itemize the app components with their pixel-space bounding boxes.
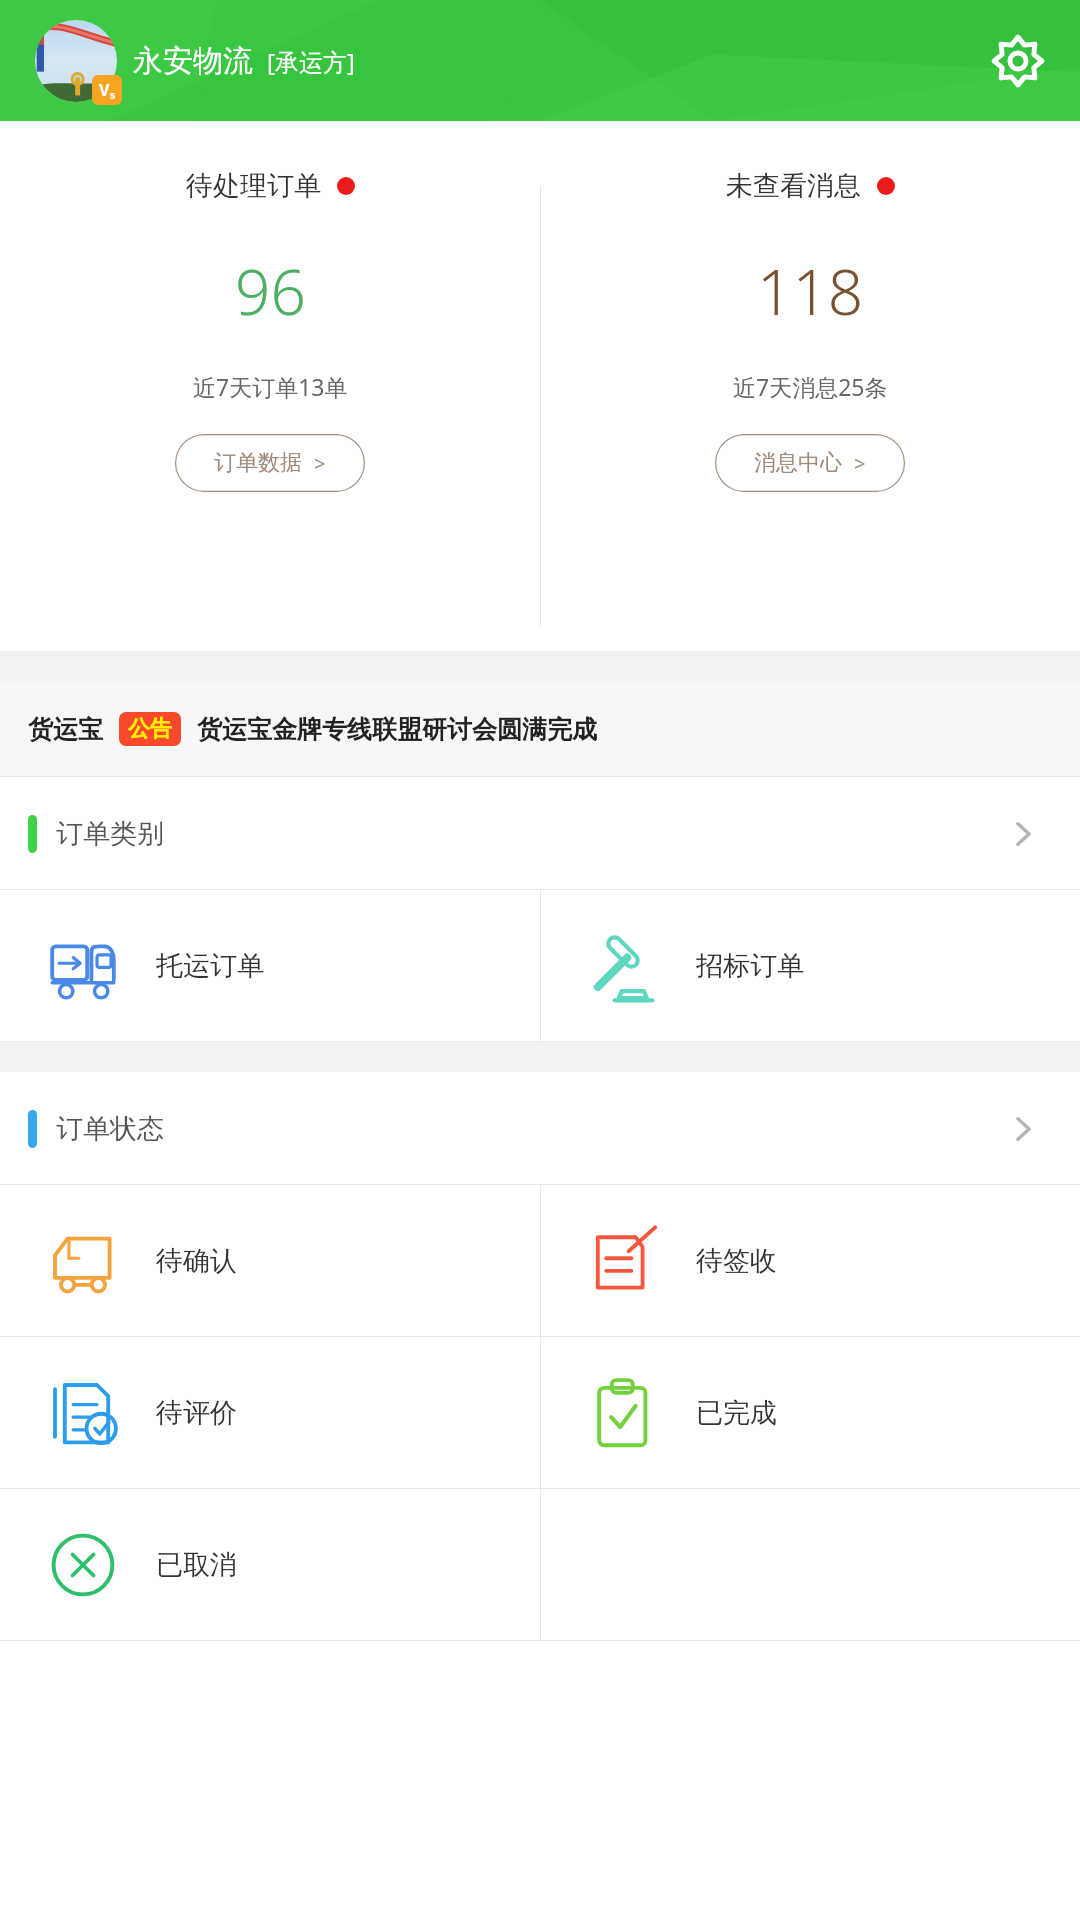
button[interactable]: 待确认 — [0, 1185, 540, 1337]
staticText: 招标订单 — [696, 949, 804, 983]
staticText: 已完成 — [696, 1396, 777, 1430]
staticText: 公告 — [128, 715, 172, 743]
staticText: 待评价 — [156, 1396, 237, 1430]
button[interactable]: 已取消 — [0, 1489, 540, 1641]
staticText: 待处理订单 — [186, 169, 321, 203]
button[interactable]: 招标订单 — [540, 890, 1080, 1042]
staticText: 118 — [757, 249, 864, 333]
button[interactable]: 待评价 — [0, 1337, 540, 1489]
staticText: > — [314, 450, 326, 477]
staticText: 已取消 — [156, 1548, 237, 1582]
staticText: 托运订单 — [156, 949, 264, 983]
staticText: [承运方] — [267, 45, 355, 78]
staticText: 订单类别 — [56, 817, 164, 851]
staticText: > — [854, 450, 866, 477]
button[interactable]: 订单类别 — [0, 777, 1080, 890]
button[interactable]: 已完成 — [540, 1337, 1080, 1489]
button[interactable]: 待签收 — [540, 1185, 1080, 1337]
staticText: V — [99, 79, 110, 101]
staticText: 96 — [235, 249, 306, 333]
button[interactable]: 订单数据 — [174, 434, 366, 492]
staticText: 近7天订单13单 — [193, 371, 348, 402]
button[interactable]: 托运订单 — [0, 890, 540, 1042]
button[interactable]: 消息中心 — [714, 434, 906, 492]
button[interactable]: Settings — [980, 23, 1056, 99]
staticText: 未查看消息 — [726, 169, 861, 203]
staticText: 订单数据 — [214, 449, 302, 477]
staticText: 5 — [110, 89, 116, 101]
staticText: 订单状态 — [56, 1112, 164, 1146]
staticText: 货运宝 — [28, 714, 103, 745]
staticText: 消息中心 — [754, 449, 842, 477]
staticText: 近7天消息25条 — [733, 371, 888, 402]
button[interactable]: 货运宝 — [0, 681, 1080, 776]
staticText: 货运宝金牌专线联盟研讨会圆满完成 — [197, 714, 597, 745]
staticText: 待签收 — [696, 1244, 777, 1278]
staticText: 待确认 — [156, 1244, 237, 1278]
button[interactable]: 订单状态 — [0, 1072, 1080, 1185]
button[interactable]: Profile avatar — [35, 20, 117, 102]
staticText: 永安物流 — [133, 42, 253, 80]
